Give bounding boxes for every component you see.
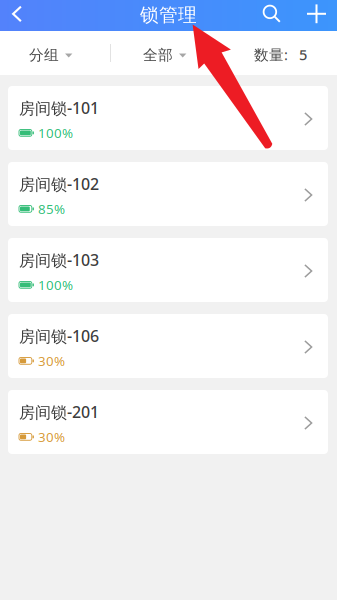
staticText: 85% [38,200,65,218]
staticText: 30% [38,428,65,446]
button[interactable]: 分组 [0,31,110,75]
button[interactable]: 全部 [111,31,221,75]
button[interactable]: 房间锁-102 [8,162,328,226]
staticText: 全部 [143,46,173,64]
staticText: 房间锁-103 [19,249,99,270]
staticText: 房间锁-106 [19,325,99,346]
button[interactable]: 房间锁-101 [8,86,328,150]
staticText: 100% [38,276,73,294]
button[interactable]: Search [248,1,296,26]
staticText: 30% [38,352,65,370]
button[interactable]: Back [0,2,34,26]
button[interactable]: Add [296,1,337,26]
button[interactable]: 房间锁-103 [8,238,328,302]
staticText: 房间锁-101 [19,97,99,118]
button[interactable]: 房间锁-106 [8,314,328,378]
staticText: 房间锁-201 [19,401,99,422]
staticText: 100% [38,124,73,142]
staticText: 分组 [29,46,59,64]
button[interactable]: 房间锁-201 [8,390,328,454]
staticText: 5 [299,45,307,64]
staticText: 数量: [254,45,288,64]
staticText: 房间锁-102 [19,173,99,194]
staticText: 锁管理 [140,3,197,26]
